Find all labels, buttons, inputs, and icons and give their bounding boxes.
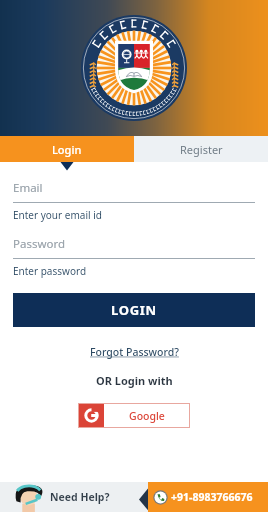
button[interactable]: LOGIN (13, 293, 255, 327)
staticText: Forgot Password? (90, 345, 179, 359)
button[interactable]: Google (78, 403, 190, 428)
button[interactable]: Need Help? (0, 482, 148, 512)
staticText: OR Login with (96, 373, 173, 388)
staticText: Login (52, 142, 82, 157)
staticText: Google (129, 409, 165, 423)
staticText: Register (180, 142, 223, 157)
button[interactable]: Register (134, 136, 268, 162)
staticText: LOGIN (111, 301, 157, 319)
staticText: Email (13, 180, 43, 196)
button[interactable]: Login (0, 136, 134, 162)
staticText: +91-8983766676 (171, 490, 253, 504)
button[interactable]: Call +91-8983766676 (148, 482, 268, 512)
staticText: Enter password (13, 264, 87, 278)
button[interactable]: Forgot Password? (84, 343, 185, 361)
staticText: Password (13, 236, 66, 252)
staticText: Need Help? (50, 490, 110, 504)
staticText: Enter your email id (13, 208, 102, 222)
